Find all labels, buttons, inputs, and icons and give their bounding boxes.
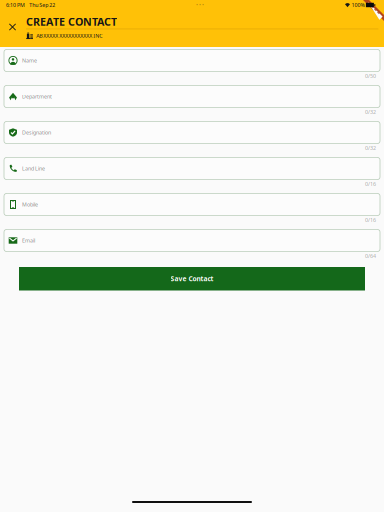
button[interactable]: Mobile: [4, 193, 380, 215]
staticText: Name: [22, 57, 37, 64]
staticText: 6:10 PM: [6, 1, 25, 9]
button[interactable]: Save Contact: [19, 267, 365, 290]
button[interactable]: Close: [0, 17, 26, 37]
staticText: CREATE CONTACT: [26, 14, 117, 29]
button[interactable]: Email: [4, 229, 380, 251]
staticText: Department: [22, 93, 52, 100]
staticText: Thu Sep 22: [29, 1, 55, 9]
staticText: 0/32: [365, 144, 376, 152]
staticText: Email: [22, 237, 35, 244]
staticText: Land Line: [22, 165, 45, 172]
staticText: 100%: [351, 1, 364, 9]
button[interactable]: Department: [4, 85, 380, 107]
staticText: • • •: [196, 1, 204, 9]
staticText: 0/16: [365, 216, 376, 224]
staticText: Save Contact: [170, 274, 213, 283]
button[interactable]: Name: [4, 49, 380, 71]
staticText: 0/32: [365, 108, 376, 116]
staticText: Mobile: [22, 201, 38, 208]
staticText: 0/50: [365, 72, 376, 80]
staticText: 0/16: [365, 180, 376, 188]
button[interactable]: Designation: [4, 121, 380, 143]
staticText: AB XXXXX XXXXXXXXXXX INC: [36, 32, 102, 39]
button[interactable]: Land Line: [4, 157, 380, 179]
staticText: Designation: [22, 129, 51, 136]
staticText: 0/64: [365, 252, 376, 260]
